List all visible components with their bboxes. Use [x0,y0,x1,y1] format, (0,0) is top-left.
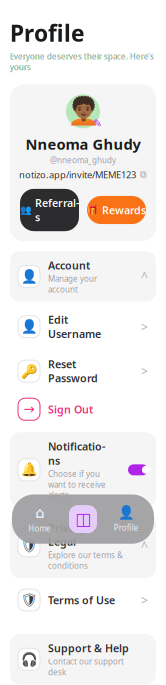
staticText: Profile [10,18,85,48]
staticText: Edit Username [48,313,101,341]
staticText: Account [48,258,90,272]
staticText: 👥 [20,205,32,215]
button[interactable]: 👤 [10,251,156,302]
staticText: 🎧 [20,652,37,667]
button[interactable]: 🎧 [10,634,156,684]
staticText: ^ [141,538,148,554]
staticText: Support & Help [48,641,129,655]
staticText: Notifications [48,439,105,468]
staticText: 🛡 [20,592,37,608]
staticText: > [141,592,148,608]
button[interactable]: 🛡 [10,582,156,618]
staticText: 🎁 [87,205,99,215]
staticText: Choose if you want to receive alerts [48,469,106,500]
button[interactable]: Notes [69,505,97,533]
staticText: 🛡 [20,538,37,553]
staticText: Terms of Use [48,593,115,607]
staticText: Reset Password [48,357,98,385]
staticText: Manage your account [48,273,97,294]
staticText: → [23,402,34,417]
button[interactable]: 🔑 [10,350,156,392]
staticText: notizo.app/invite/MEME123 [19,168,136,181]
staticText: ⧉ [140,170,147,179]
staticText: ^ [141,268,148,284]
staticText: Everyone deserves their space. Here's yo… [10,51,154,72]
staticText: ⌂ [35,504,44,521]
staticText: @nneoma_ghudy [50,155,116,165]
staticText: Profile [114,522,139,533]
staticText: Contact our support desk [48,656,124,677]
staticText: ✎ [93,117,102,129]
staticText: Sign Out [48,402,93,416]
staticText: Rewards [102,203,146,217]
staticText: > [141,363,148,379]
staticText: 🔑 [20,363,37,379]
staticText: Referrals [35,196,79,224]
staticText: 🧑🏾‍🦱 [66,96,99,127]
button[interactable]: ⌂ [18,498,61,540]
staticText: Privacy & Legal [48,520,97,549]
button[interactable]: 👤 [105,499,148,539]
button[interactable]: 🛡 [10,513,156,578]
staticText: ◫ [75,509,91,529]
button[interactable]: notizo.app/invite/MEME123 [19,165,147,184]
staticText: Home [28,523,51,534]
staticText: 👤 [118,505,135,520]
button[interactable]: 👤 [10,306,156,348]
button[interactable]: 🎁 [87,196,146,224]
button[interactable]: 🔔 [10,432,156,507]
staticText: Nneoma Ghudy [25,134,140,154]
button[interactable]: → [10,394,156,424]
staticText: 👤 [20,319,37,334]
button[interactable]: 👥 [20,189,79,231]
staticText: 👤 [20,269,37,284]
staticText: 🔔 [20,462,37,477]
staticText: Explore our terms & conditions [48,550,123,571]
staticText: > [141,319,148,335]
